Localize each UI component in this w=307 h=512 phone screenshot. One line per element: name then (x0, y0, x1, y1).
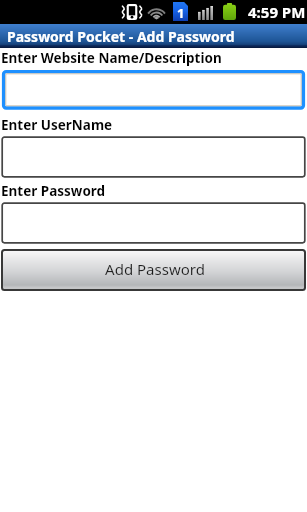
staticText: 4:59 PM (248, 2, 306, 22)
button[interactable] (1, 69, 306, 111)
other: Vibrate mode (122, 4, 142, 20)
staticText: Add Password (105, 259, 205, 279)
button[interactable] (1, 202, 306, 244)
other: Wi-Fi (146, 4, 167, 20)
staticText: Password Pocket - Add Password (7, 27, 235, 46)
staticText: Enter Website Name/Description (1, 49, 222, 67)
other: SIM 1 (173, 2, 188, 21)
other: Signal strength (198, 6, 213, 20)
button[interactable]: Add Password (1, 249, 306, 291)
staticText: Enter UserName (1, 116, 113, 134)
staticText: Enter Password (1, 182, 106, 200)
other: Battery (223, 3, 236, 20)
staticText: 1 (177, 4, 185, 22)
button[interactable] (1, 136, 306, 178)
